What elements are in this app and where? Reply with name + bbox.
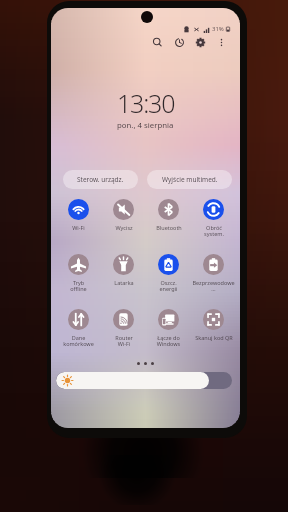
button[interactable]: Dane komórkowe [55, 309, 101, 364]
staticText: pon., 4 sierpnia [117, 120, 174, 131]
staticText: 31% [212, 25, 224, 33]
staticText: Dane komórkowe [63, 334, 94, 348]
staticText: 13:30 [117, 86, 175, 120]
staticText: Bluetooth [156, 224, 182, 231]
button[interactable]: Wycisz [101, 199, 146, 254]
button[interactable]: Sterow. urządz. [63, 170, 138, 189]
button[interactable]: Bezprzewodowe … [191, 254, 236, 309]
button[interactable]: Wyjście multimed. [147, 170, 232, 189]
staticText: Latarka [114, 279, 134, 286]
staticText: Wi-Fi [72, 224, 85, 231]
button[interactable]: Settings [194, 36, 207, 49]
staticText: Bezprzewodowe … [191, 279, 236, 293]
staticText: Router Wi-Fi [115, 334, 133, 348]
staticText: Sterow. urządz. [77, 175, 124, 184]
button[interactable]: Oszcz. energii [146, 254, 191, 309]
button[interactable]: Brightness [56, 372, 232, 389]
button[interactable]: Latarka [101, 254, 146, 309]
staticText: Skanuj kod QR [195, 334, 233, 341]
button[interactable]: More options [215, 36, 228, 49]
staticText: Łącze do Windows [146, 334, 191, 348]
staticText: Oszcz. energii [159, 279, 178, 293]
button[interactable]: Search [151, 36, 164, 49]
button[interactable]: Skanuj kod QR [191, 309, 236, 364]
button[interactable]: Tryb offline [55, 254, 101, 309]
button[interactable]: Łącze do Windows [146, 309, 191, 364]
staticText: Tryb offline [70, 279, 87, 293]
button[interactable]: Obróć system. [191, 199, 236, 254]
button[interactable]: Bluetooth [146, 199, 191, 254]
button[interactable]: Wi-Fi [55, 199, 101, 254]
staticText: Wyjście multimed. [162, 175, 218, 184]
button[interactable]: Router Wi-Fi [101, 309, 146, 364]
button[interactable]: History [173, 36, 186, 49]
staticText: Obróć system. [204, 224, 224, 238]
staticText: Wycisz [115, 224, 133, 231]
